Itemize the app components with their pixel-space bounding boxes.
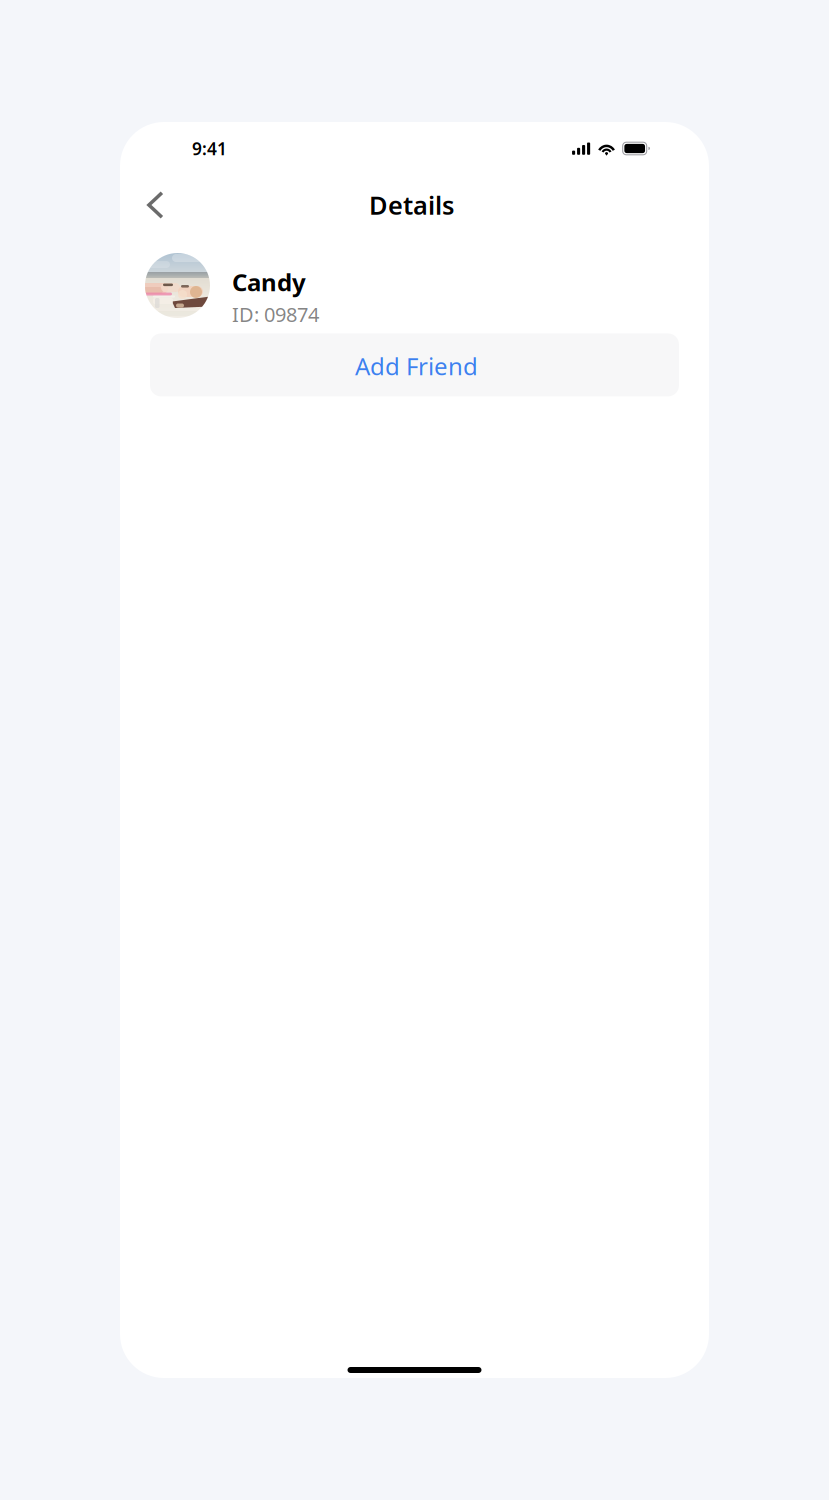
staticText: Details bbox=[369, 188, 454, 222]
staticText: Candy bbox=[232, 266, 306, 298]
button[interactable]: Add Friend bbox=[150, 333, 679, 396]
staticText: 9:41 bbox=[192, 137, 227, 160]
button[interactable]: Back bbox=[146, 186, 190, 230]
staticText: Add Friend bbox=[355, 350, 478, 382]
staticText: ID: 09874 bbox=[232, 301, 319, 327]
